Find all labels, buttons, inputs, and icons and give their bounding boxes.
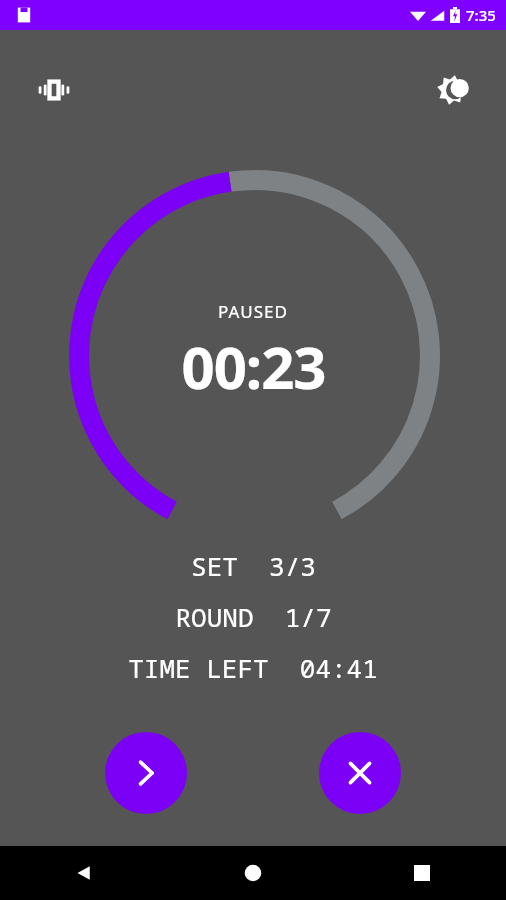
staticText: PAUSED: [218, 300, 288, 323]
staticText: SET 3/3: [191, 548, 316, 583]
button[interactable]: Stop: [319, 732, 401, 814]
button[interactable]: Back: [0, 846, 168, 900]
button[interactable]: Vibration: [30, 66, 78, 114]
button[interactable]: Recent apps: [337, 846, 506, 900]
staticText: 7:35: [466, 5, 496, 25]
button[interactable]: Resume: [105, 732, 187, 814]
button[interactable]: Home: [168, 846, 337, 900]
staticText: TIME LEFT 04:41: [128, 650, 378, 685]
staticText: 00:23: [181, 327, 326, 406]
button[interactable]: Toggle brightness: [428, 66, 476, 114]
staticText: ROUND 1/7: [175, 599, 332, 634]
